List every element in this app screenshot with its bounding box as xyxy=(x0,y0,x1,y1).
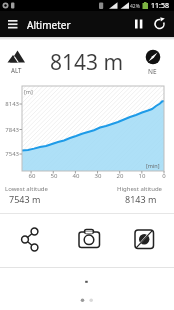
staticText: 40 xyxy=(70,172,82,180)
staticText: ALT xyxy=(11,66,22,74)
staticText: 10 xyxy=(136,172,148,180)
staticText: 0 xyxy=(158,172,170,180)
staticText: 7543 m xyxy=(9,193,41,205)
button[interactable] xyxy=(151,14,169,34)
button[interactable] xyxy=(128,226,160,253)
button[interactable] xyxy=(14,226,46,253)
staticText: [min] xyxy=(146,162,160,169)
staticText: 7543 xyxy=(2,150,19,158)
button[interactable] xyxy=(73,226,105,253)
staticText: [m] xyxy=(24,88,33,95)
staticText: 8143 m xyxy=(50,48,124,74)
staticText: Lowest altitude xyxy=(5,185,48,193)
staticText: 60 xyxy=(26,172,38,180)
staticText: Highest altitude xyxy=(117,185,162,193)
staticText: Altimeter xyxy=(27,18,71,32)
staticText: 8143 m xyxy=(125,193,157,205)
button[interactable] xyxy=(131,14,146,34)
staticText: 30 xyxy=(92,172,104,180)
staticText: NE xyxy=(148,67,157,76)
staticText: 7843 xyxy=(2,126,19,134)
button[interactable] xyxy=(75,293,99,307)
staticText: 20 xyxy=(114,172,126,180)
staticText: 50 xyxy=(48,172,60,180)
staticText: 42% xyxy=(130,3,140,10)
staticText: 11:58 xyxy=(151,1,169,11)
staticText: 8143 xyxy=(2,100,19,108)
button[interactable] xyxy=(4,14,24,34)
